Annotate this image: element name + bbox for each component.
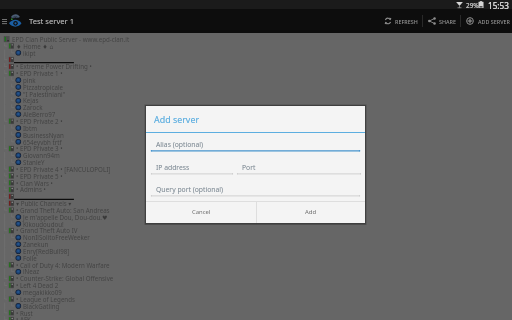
button[interactable]: • EPD Private 4 • [FANCULOPOLI]: [16, 165, 111, 173]
staticText: IP address: [156, 163, 190, 172]
button[interactable]: iNeaz: [23, 267, 40, 275]
staticText: "I Palestiniani": [23, 90, 66, 98]
staticText: Zanekun: [23, 240, 49, 248]
button[interactable]: Kikoudoudou!: [23, 220, 64, 228]
staticText: Zarock: [23, 103, 43, 111]
staticText: Port: [242, 163, 256, 172]
staticText: • AFK: [16, 315, 31, 320]
staticText: • EPD Private 4 • [FANCULOPOLI]: [16, 165, 111, 173]
staticText: • EPD Private 3 •: [16, 144, 63, 152]
staticText: ADD SERVER: [478, 18, 510, 25]
staticText: • EPD Private 2 •: [16, 117, 63, 125]
staticText: 654eyvbh trtf: [23, 138, 62, 146]
staticText: ikipt: [23, 49, 36, 57]
button[interactable]: Kejas: [23, 96, 39, 104]
button[interactable]: • Admins •: [16, 185, 46, 193]
staticText: • EPD Private 1 •: [16, 69, 63, 77]
button[interactable]: 654eyvbh trtf: [23, 138, 62, 146]
button[interactable]: Enry[RedBull98]: [23, 247, 70, 255]
button[interactable]: Port: [237, 159, 361, 178]
staticText: • Grand Theft Auto: San Andreas: [16, 206, 110, 214]
button[interactable]: • AFK: [16, 315, 31, 320]
button[interactable]: ♦ Home ♦ ⌂: [16, 42, 54, 50]
button[interactable]: Je m'appelle Dou, Dou-dou.♥: [23, 213, 108, 221]
staticText: • League of Legends: [16, 295, 75, 303]
staticText: Enry[RedBull98]: [23, 247, 70, 255]
button[interactable]: EPD Clan Public Server - www.epd-clan.it: [12, 35, 130, 43]
staticText: BusinessNyan: [23, 131, 64, 139]
button[interactable]: pink: [23, 76, 36, 84]
button[interactable]: • Rust: [16, 309, 33, 317]
button[interactable]: • EPD Private 3 •: [16, 144, 63, 152]
button[interactable]: • EPD Private 1 •: [16, 69, 63, 77]
staticText: BlackGatling: [23, 302, 60, 310]
staticText: • Extreme Power Drifting •: [16, 62, 92, 70]
staticText: Kikoudoudou!: [23, 220, 64, 228]
staticText: Giovann94m: [23, 151, 60, 159]
button[interactable]: [381, 9, 421, 33]
staticText: • EPD Private 5 •: [16, 172, 63, 180]
staticText: Query port (optional): [156, 185, 224, 194]
button[interactable]: • Grand Theft Auto: San Andreas: [16, 206, 110, 214]
button[interactable]: • Grand Theft Auto IV: [16, 226, 78, 234]
staticText: 29%: [466, 1, 479, 10]
staticText: 15:53: [488, 0, 509, 9]
button[interactable]: Add: [257, 201, 365, 223]
button[interactable]: Ibtm: [23, 124, 37, 132]
button[interactable]: megakikko09: [23, 288, 62, 296]
staticText: Ibtm: [23, 124, 37, 132]
staticText: iNeaz: [23, 267, 40, 275]
staticText: Cancel: [192, 208, 211, 216]
button[interactable]: Query port (optional): [151, 181, 360, 200]
staticText: REFRESH: [395, 18, 418, 25]
button[interactable]: AleBerro97: [23, 110, 56, 118]
staticText: ♦ Home ♦ ⌂: [16, 42, 54, 50]
staticText: • Call of Duty 4: Modern Warfare: [16, 261, 110, 269]
button[interactable]: Open navigation drawer: [0, 9, 9, 33]
button[interactable]: "I Palestiniani": [23, 90, 66, 98]
staticText: Alias (optional): [156, 140, 204, 149]
button[interactable]: ▾ Public Channels ▾: [16, 199, 72, 207]
staticText: NonIlSolitoFreeWeeker: [23, 233, 90, 241]
button[interactable]: • Extreme Power Drifting •: [16, 62, 92, 70]
button[interactable]: [462, 9, 512, 33]
button[interactable]: • EPD Private 2 •: [16, 117, 63, 125]
button[interactable]: Folle: [23, 254, 37, 262]
staticText: • Left 4 Dead 2: [16, 281, 59, 289]
staticText: StanleY: [23, 158, 45, 166]
button[interactable]: • Clan Wars •: [16, 179, 53, 187]
button[interactable]: Giovann94m: [23, 151, 60, 159]
button[interactable]: Cancel: [146, 201, 256, 223]
button[interactable]: Alias (optional): [151, 136, 360, 155]
button[interactable]: [424, 9, 460, 33]
button[interactable]: NonIlSolitoFreeWeeker: [23, 233, 90, 241]
button[interactable]: • League of Legends: [16, 295, 75, 303]
button[interactable]: Zarock: [23, 103, 43, 111]
button[interactable]: • Left 4 Dead 2: [16, 281, 59, 289]
button[interactable]: BlackGatling: [23, 302, 60, 310]
staticText: EPD Clan Public Server - www.epd-clan.it: [12, 35, 130, 43]
staticText: Test server 1: [29, 16, 74, 26]
button[interactable]: ikipt: [23, 49, 36, 57]
button[interactable]: StanleY: [23, 158, 45, 166]
staticText: Add: [305, 208, 317, 216]
button[interactable]: Pizzatropicale: [23, 83, 63, 91]
staticText: • Counter-Strike: Global Offensive: [16, 274, 114, 282]
staticText: Je m'appelle Dou, Dou-dou.♥: [23, 213, 108, 221]
button[interactable]: • Call of Duty 4: Modern Warfare: [16, 261, 110, 269]
staticText: • Rust: [16, 309, 33, 317]
staticText: • Clan Wars •: [16, 179, 53, 187]
button[interactable]: IP address: [151, 159, 233, 178]
staticText: megakikko09: [23, 288, 62, 296]
staticText: Folle: [23, 254, 37, 262]
button[interactable]: • EPD Private 5 •: [16, 172, 63, 180]
staticText: Add server: [154, 113, 200, 125]
button[interactable]: Zanekun: [23, 240, 49, 248]
button[interactable]: • Counter-Strike: Global Offensive: [16, 274, 114, 282]
button[interactable]: BusinessNyan: [23, 131, 64, 139]
staticText: • Grand Theft Auto IV: [16, 226, 78, 234]
staticText: SHARE: [439, 18, 456, 25]
staticText: • Admins •: [16, 185, 46, 193]
staticText: ▾ Public Channels ▾: [16, 199, 72, 207]
staticText: Pizzatropicale: [23, 83, 63, 91]
